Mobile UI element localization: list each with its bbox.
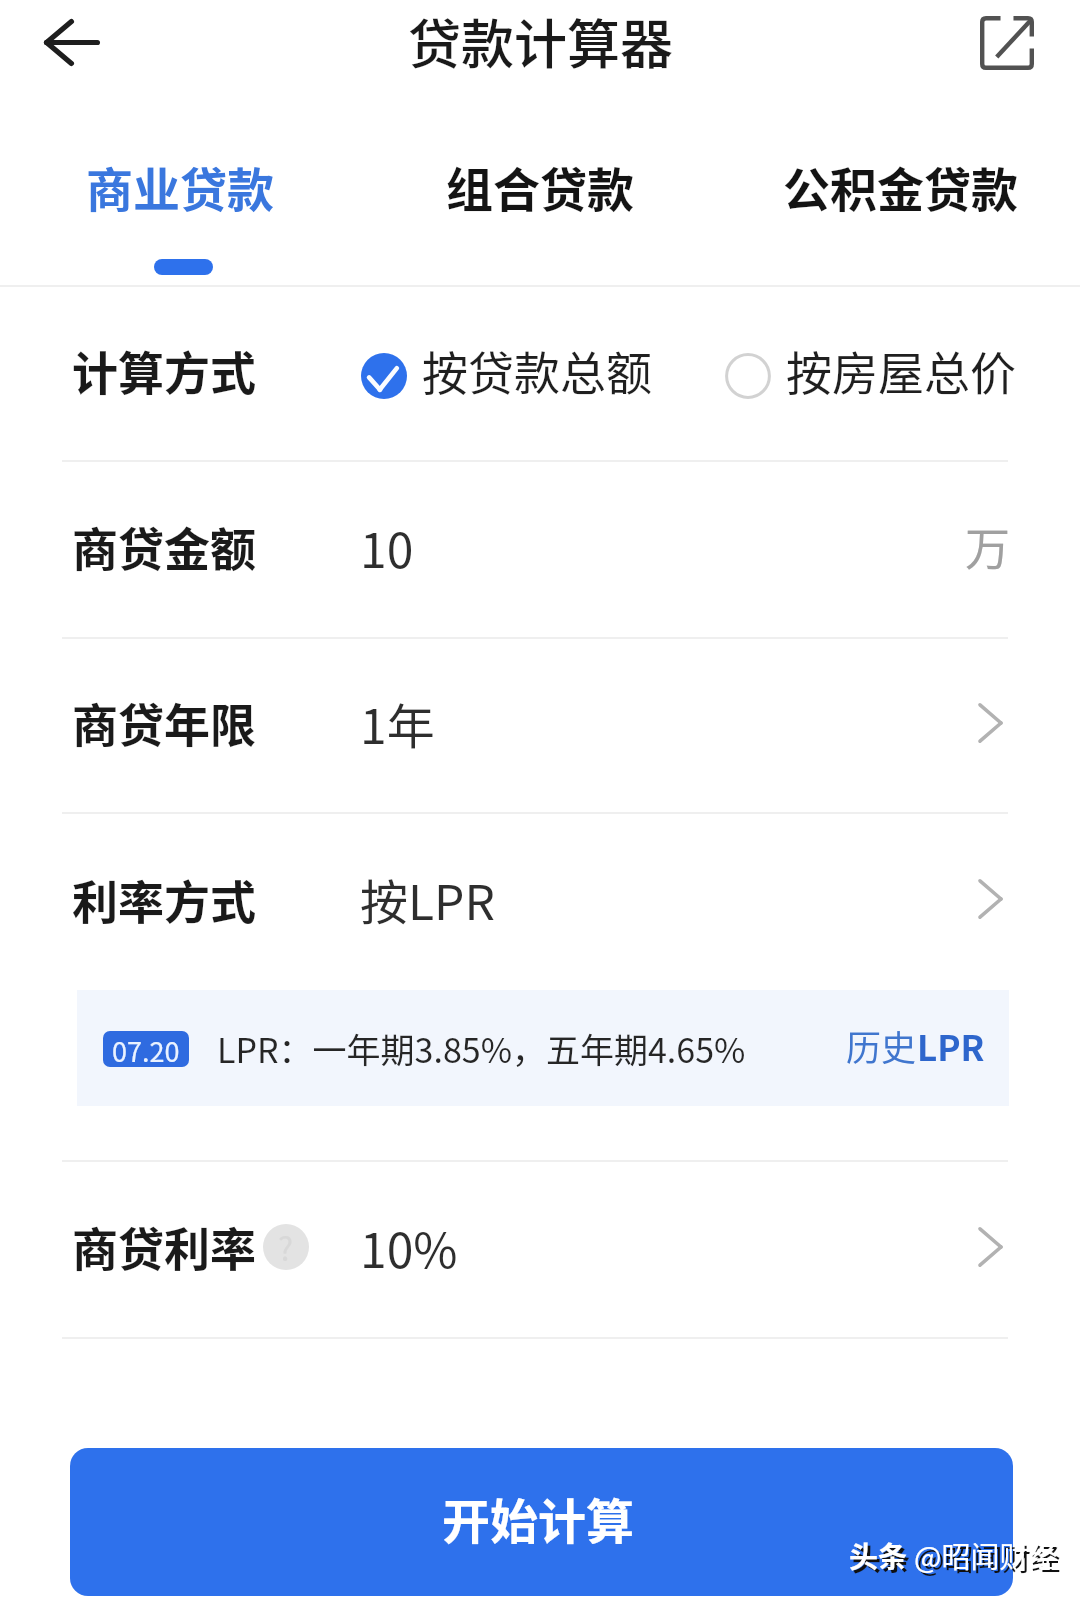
staticText: 公积金贷款 bbox=[783, 152, 1018, 220]
staticText: 商业贷款 bbox=[86, 152, 274, 220]
staticText: 贷款计算器 bbox=[408, 3, 673, 80]
staticText: @昭闻财经 bbox=[917, 1537, 1061, 1579]
staticText: 组合贷款 bbox=[446, 152, 634, 220]
button[interactable]: 组合贷款 bbox=[360, 100, 720, 285]
button[interactable]: 商贷利率 bbox=[0, 1162, 1080, 1337]
staticText: @昭闻财经 bbox=[914, 1534, 1058, 1576]
staticText: 头条 bbox=[852, 1537, 917, 1579]
staticText: 计算方式 bbox=[72, 337, 256, 404]
button[interactable]: 利率方式 bbox=[0, 814, 1080, 990]
staticText: 10 bbox=[360, 512, 414, 582]
staticText: 10% bbox=[360, 1212, 458, 1282]
button[interactable]: 公积金贷款 bbox=[720, 100, 1080, 285]
staticText: 开始计算 bbox=[442, 1483, 635, 1553]
staticText: 按LPR bbox=[360, 864, 495, 934]
staticText: 商贷年限 bbox=[72, 689, 256, 756]
staticText: 按房屋总价 bbox=[786, 337, 1016, 404]
staticText: ? bbox=[278, 1224, 294, 1270]
staticText: 商贷金额 bbox=[72, 513, 256, 580]
staticText: 历史 bbox=[846, 1020, 917, 1071]
button[interactable]: 按房屋总价 bbox=[725, 337, 1016, 404]
button[interactable]: 按贷款总额 bbox=[361, 337, 652, 404]
staticText: 按贷款总额 bbox=[422, 337, 652, 404]
staticText: LPR：一年期3.85%，五年期4.65% bbox=[217, 1024, 746, 1073]
button[interactable]: 商业贷款 bbox=[0, 100, 360, 285]
staticText: 利率方式 bbox=[72, 866, 256, 933]
button[interactable]: 07.20 bbox=[77, 990, 1009, 1106]
button[interactable]: 商贷年限 bbox=[0, 639, 1080, 812]
button[interactable]: Back bbox=[14, 8, 100, 94]
staticText: 商贷利率 bbox=[72, 1213, 256, 1280]
staticText: 07.20 bbox=[112, 1031, 180, 1067]
staticText: 万 bbox=[965, 514, 1011, 579]
button[interactable]: 计算方式 bbox=[0, 287, 1080, 460]
button[interactable]: 商贷金额 bbox=[0, 462, 1080, 637]
staticText: LPR bbox=[917, 1020, 985, 1071]
staticText: 1年 bbox=[360, 688, 435, 758]
button[interactable]: Share bbox=[967, 3, 1047, 83]
staticText: 头条 bbox=[849, 1534, 914, 1576]
button[interactable]: 开始计算 bbox=[70, 1448, 1013, 1596]
